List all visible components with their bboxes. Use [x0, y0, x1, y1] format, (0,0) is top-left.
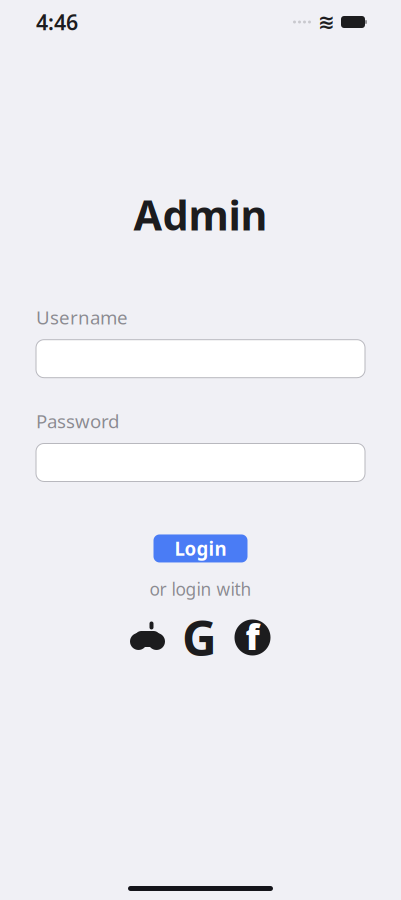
button[interactable]: Sign in with Apple: [130, 618, 164, 656]
staticText: Admin: [133, 187, 267, 242]
staticText: G: [182, 606, 217, 669]
staticText: or login with: [149, 577, 251, 600]
button[interactable]: Sign in with Google: [182, 618, 216, 656]
staticText: Username: [36, 305, 128, 330]
staticText: f: [245, 613, 259, 659]
button[interactable]: Sign in with Facebook: [234, 618, 270, 656]
button[interactable]: Login: [153, 534, 247, 562]
staticText: ≋: [318, 11, 335, 33]
staticText: Password: [36, 409, 119, 433]
staticText: 4:46: [36, 8, 78, 36]
staticText: Login: [174, 536, 226, 561]
